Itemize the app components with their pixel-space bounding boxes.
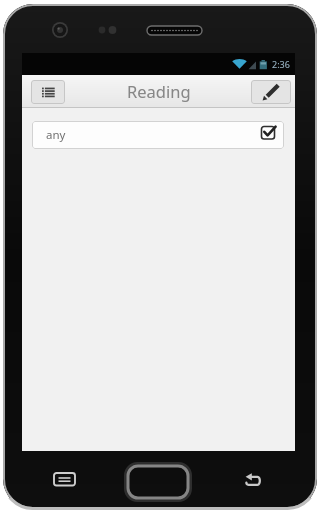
staticText: Reading <box>127 80 191 102</box>
staticText: any <box>46 127 66 143</box>
staticText: 2:36 <box>272 58 290 70</box>
